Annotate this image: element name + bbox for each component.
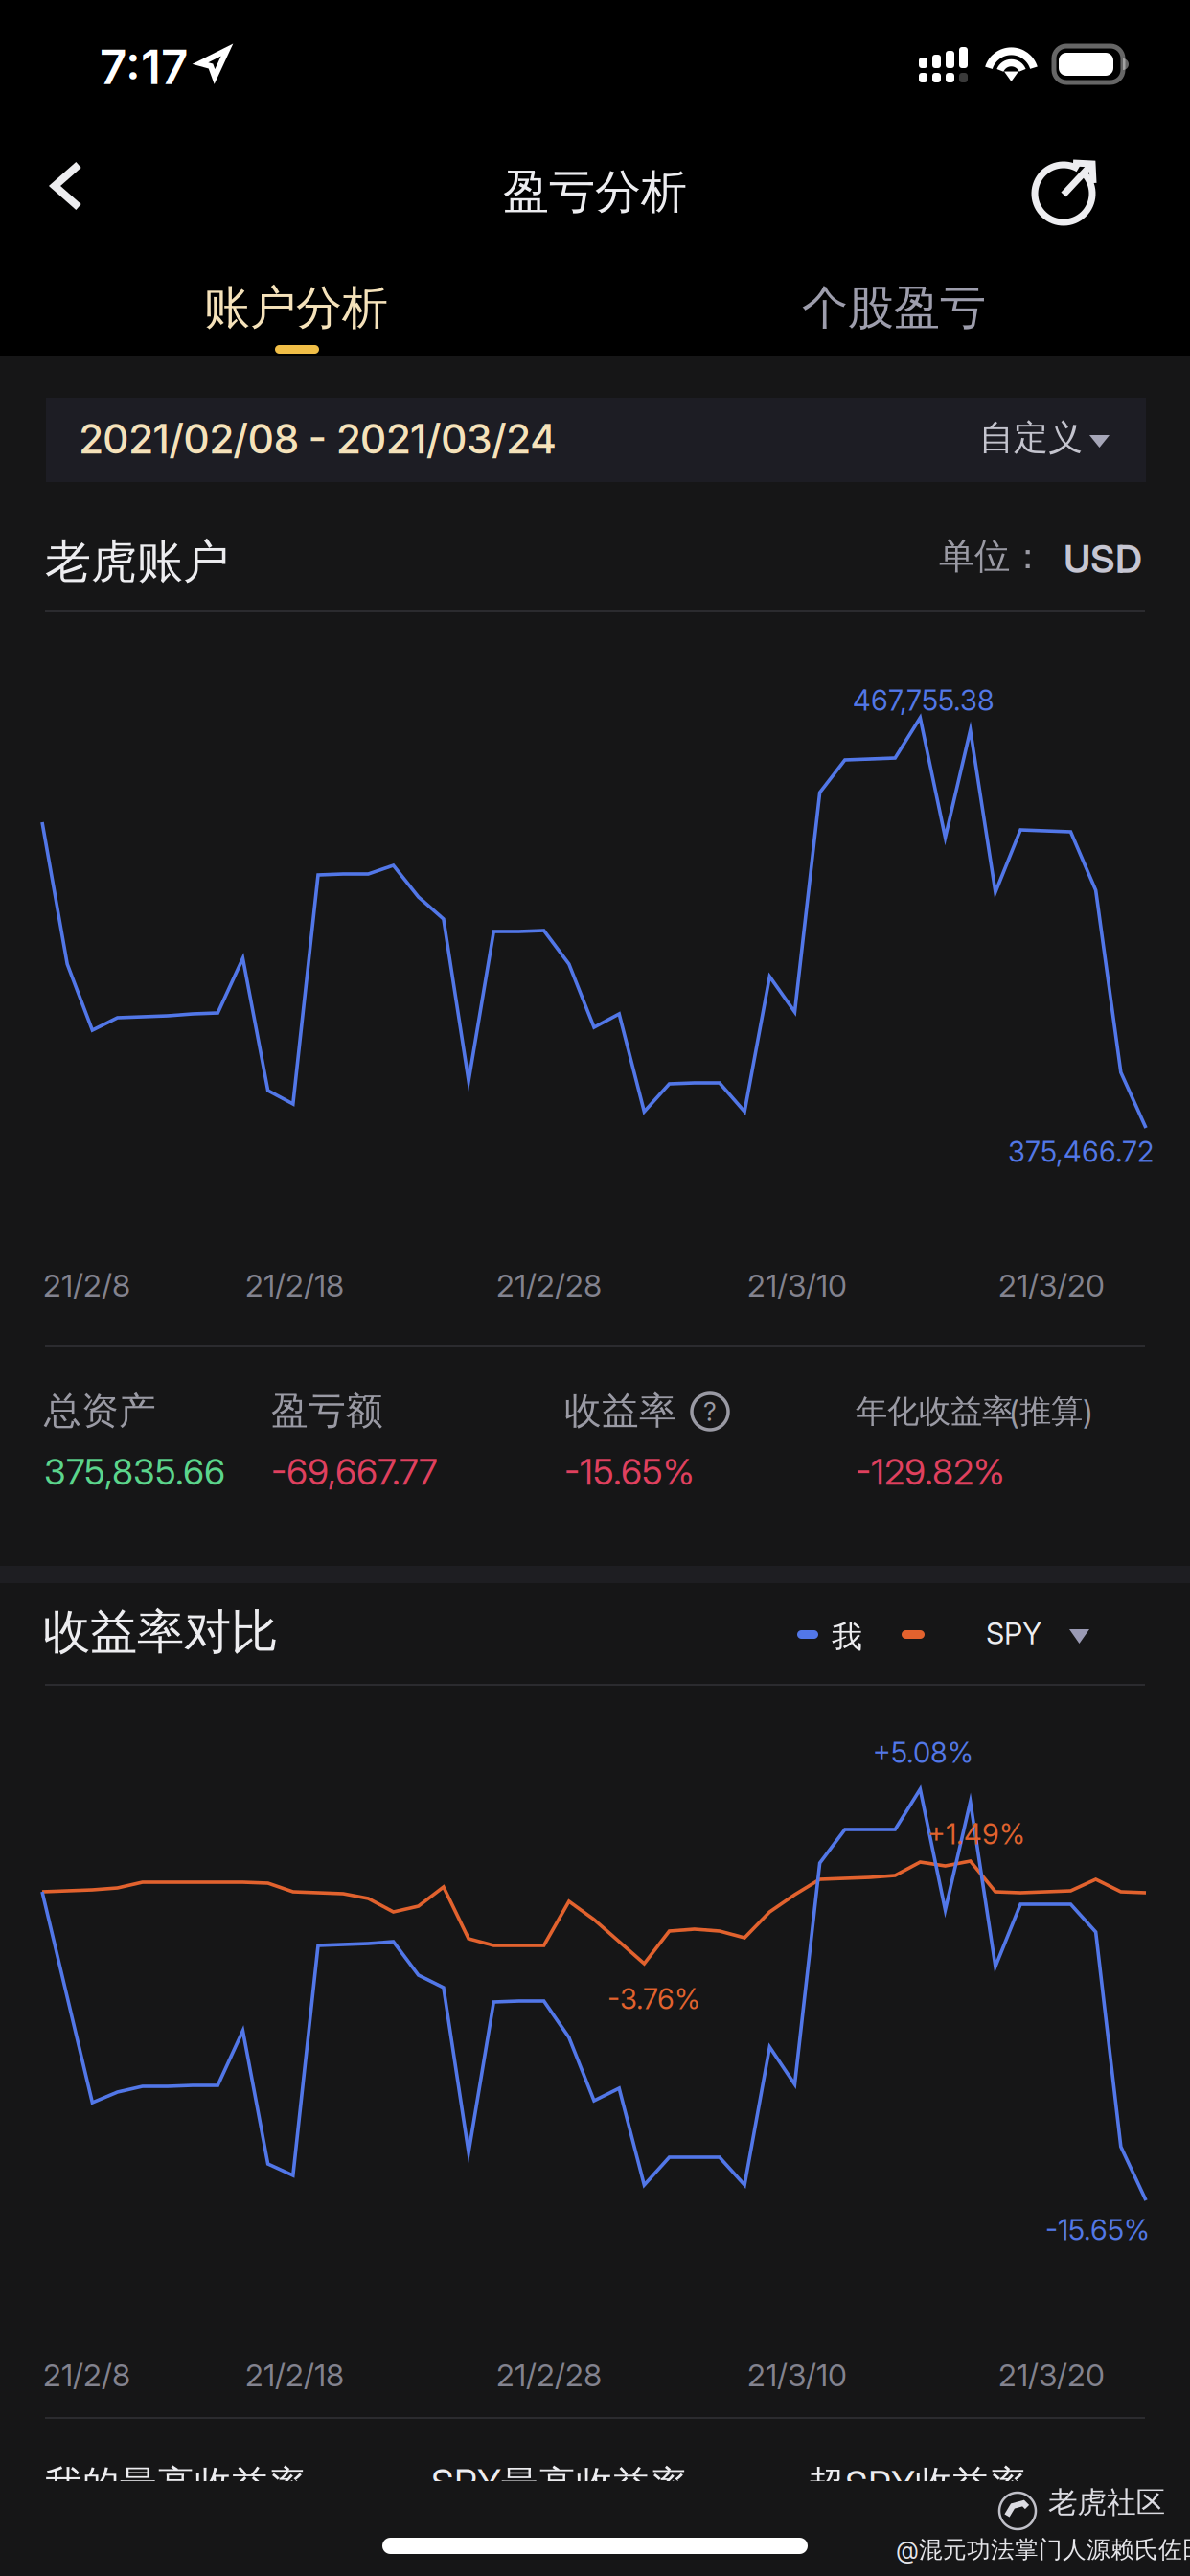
staticText: SPY最高收益率 xyxy=(431,2461,688,2508)
button[interactable]: SPY xyxy=(986,1616,1120,1664)
staticText: -15.65% xyxy=(564,1450,695,1493)
button[interactable]: 个股盈亏 xyxy=(594,243,1190,356)
staticText: 21/3/20 xyxy=(998,2357,1105,2394)
staticText: 我 xyxy=(832,1618,862,1656)
button[interactable]: Share xyxy=(1006,142,1121,238)
staticText: 老虎社区 xyxy=(1048,2484,1166,2521)
staticText: 账户分析 xyxy=(204,279,388,337)
staticText: 467,755.38 xyxy=(853,683,995,717)
staticText: 21/2/18 xyxy=(245,1267,344,1304)
button[interactable]: Help xyxy=(690,1391,730,1432)
staticText: 21/2/8 xyxy=(43,1267,130,1304)
staticText: +5.08% xyxy=(873,1736,973,1770)
staticText: -129.82% xyxy=(856,1450,1005,1493)
staticText: 21/2/28 xyxy=(496,1267,602,1304)
staticText: -3.76% xyxy=(607,1982,700,2016)
staticText: 21/2/18 xyxy=(245,2357,344,2394)
staticText: 375,835.66 xyxy=(44,1450,225,1493)
staticText: 盈亏额 xyxy=(271,1388,383,1434)
staticText: 7:17 xyxy=(100,38,188,96)
staticText: @混元功法掌门人源赖氏佐田 xyxy=(896,2535,1190,2565)
staticText: 超SPY收益率 xyxy=(808,2461,1027,2508)
staticText: 年化收益率 xyxy=(856,1391,1014,1432)
button[interactable]: 2021/02/08 - 2021/03/24 xyxy=(46,398,1146,482)
staticText: 2021/02/08 - 2021/03/24 xyxy=(79,414,557,463)
staticText: 个股盈亏 xyxy=(802,279,986,337)
staticText: 21/3/20 xyxy=(998,1267,1105,1304)
staticText: -15.65% xyxy=(1045,2213,1150,2247)
staticText: +1.49% xyxy=(927,1817,1025,1851)
staticText: 盈亏分析 xyxy=(503,163,687,221)
staticText: SPY xyxy=(986,1616,1041,1651)
staticText: ? xyxy=(703,1396,717,1427)
staticText: 老虎账户 xyxy=(45,533,229,591)
staticText: 21/3/10 xyxy=(747,1267,847,1304)
staticText: 21/2/8 xyxy=(43,2357,130,2394)
staticText: (推算) xyxy=(1009,1391,1093,1432)
staticText: 21/2/28 xyxy=(496,2357,602,2394)
staticText: 收益率对比 xyxy=(43,1602,278,1662)
staticText: 自定义 xyxy=(979,416,1083,459)
button[interactable]: 账户分析 xyxy=(0,243,594,356)
staticText: 我的最高收益率 xyxy=(45,2461,307,2508)
staticText: 总资产 xyxy=(44,1388,156,1434)
staticText: 收益率 xyxy=(564,1388,676,1434)
button[interactable]: Back xyxy=(25,142,109,230)
staticText: 单位： xyxy=(939,534,1045,579)
staticText: -69,667.77 xyxy=(271,1450,438,1493)
staticText: 375,466.72 xyxy=(1008,1135,1154,1169)
staticText: 21/3/10 xyxy=(747,2357,847,2394)
staticText: USD xyxy=(1064,536,1142,582)
